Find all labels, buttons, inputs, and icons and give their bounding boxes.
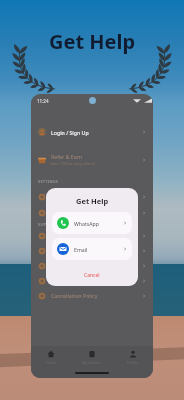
button[interactable]: Notifications [31,189,153,205]
button[interactable]: Get Help [31,243,153,258]
button[interactable]: Refer & Earn [31,146,153,173]
staticText: 11:24 [37,98,49,104]
staticText: WhatsApp [74,220,123,227]
staticText: Get Help [51,247,73,254]
staticText: Earn ₹100 for every referral [51,161,95,166]
button[interactable]: Privacy Policy [31,273,153,288]
button[interactable]: FAQs [31,228,153,243]
button[interactable]: Cancel [78,271,106,280]
button[interactable]: Login / Sign Up [31,121,153,143]
staticText: Refer & Earn [51,153,83,160]
button[interactable]: My Orders [71,346,112,368]
button[interactable]: Terms & Conditions [31,258,153,273]
button[interactable]: Cancellation Policy [31,288,153,303]
staticText: Notifications [51,194,83,201]
staticText: Profile [127,360,139,365]
button[interactable]: WhatsApp [52,212,132,234]
staticText: Get Help [76,196,109,206]
button[interactable]: Email [52,238,132,260]
staticText: FAQs [51,232,64,239]
staticText: Addresses [51,210,77,217]
staticText: SETTINGS [38,179,59,184]
staticText: Login / Sign Up [51,129,89,136]
staticText: Get Help [49,28,136,55]
button[interactable]: Addresses [31,205,153,221]
staticText: Home [46,360,57,365]
staticText: My Orders [82,360,101,365]
button[interactable]: Profile [112,346,153,368]
staticText: Cancellation Policy [51,292,98,299]
staticText: Email [74,246,123,253]
staticText: Cancel [84,272,100,279]
staticText: SUPPORT [38,222,58,227]
button[interactable]: Home [31,346,71,368]
